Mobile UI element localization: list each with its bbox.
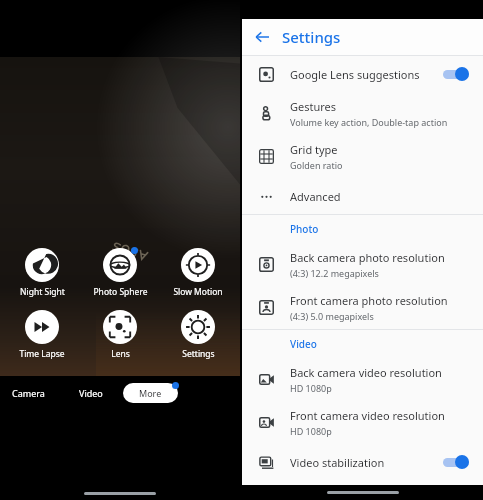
button[interactable]: Video [73, 381, 109, 405]
button[interactable]: Front camera video resolution [242, 401, 483, 444]
button[interactable]: Camera [6, 381, 51, 405]
button[interactable]: Advanced [242, 178, 483, 214]
button[interactable]: Front camera photo resolution [242, 286, 483, 329]
staticText: HD 1080p [290, 382, 332, 394]
button[interactable]: More [123, 383, 178, 403]
staticText: Volume key action, Double-tap action [290, 116, 448, 128]
button[interactable]: Photo Sphere [84, 248, 156, 298]
staticText: Photo [290, 222, 319, 236]
staticText: Camera [12, 387, 45, 399]
button[interactable]: Night Sight [6, 248, 78, 298]
button[interactable]: Slow Motion [162, 248, 234, 298]
staticText: Golden ratio [290, 159, 343, 171]
staticText: Back camera video resolution [290, 365, 442, 380]
button[interactable]: Grid type [242, 135, 483, 178]
staticText: Settings [282, 27, 341, 47]
staticText: Photo Sphere [93, 286, 148, 298]
button[interactable]: Back camera video resolution [242, 358, 483, 401]
staticText: Gestures [290, 99, 337, 114]
button[interactable]: Google Lens suggestions [242, 56, 483, 92]
staticText: Lens [111, 348, 130, 360]
staticText: More [139, 387, 162, 399]
button[interactable]: Gestures [242, 92, 483, 135]
staticText: Settings [182, 348, 215, 360]
button[interactable]: Lens [84, 310, 156, 360]
staticText: Video stabilization [290, 455, 385, 470]
staticText: Video [290, 337, 317, 351]
staticText: Google Lens suggestions [290, 67, 420, 82]
button[interactable]: Settings [162, 310, 234, 360]
staticText: Grid type [290, 142, 338, 157]
staticText: HD 1080p [290, 425, 332, 437]
staticText: Video [79, 387, 103, 399]
button[interactable]: Back camera photo resolution [242, 243, 483, 286]
staticText: Time Lapse [19, 348, 65, 360]
staticText: Front camera video resolution [290, 408, 445, 423]
staticText: (4:3) 5.0 megapixels [290, 310, 374, 322]
staticText: Advanced [290, 189, 341, 204]
staticText: Night Sight [20, 286, 65, 298]
button[interactable]: Video stabilization [242, 444, 483, 480]
staticText: (4:3) 12.2 megapixels [290, 267, 379, 279]
staticText: Back camera photo resolution [290, 250, 445, 265]
staticText: Slow Motion [173, 286, 223, 298]
button[interactable]: Back [251, 26, 273, 48]
button[interactable]: Time Lapse [6, 310, 78, 360]
staticText: Front camera photo resolution [290, 293, 448, 308]
